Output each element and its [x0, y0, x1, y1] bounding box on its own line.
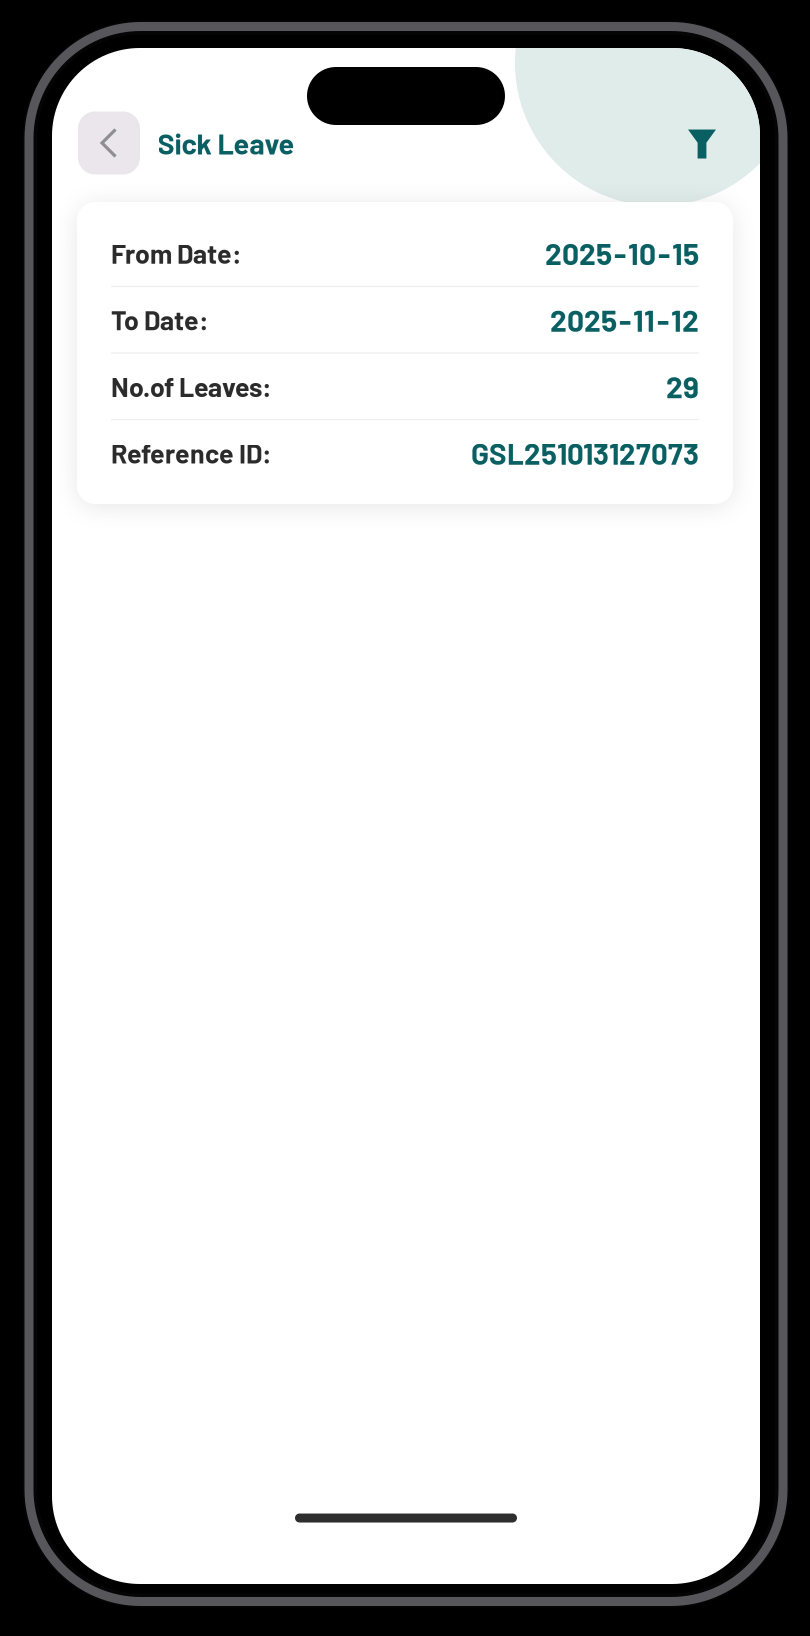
button[interactable]: Sick Leave — [155, 119, 297, 167]
staticText: To Date: — [111, 304, 209, 336]
staticText: From Date: — [111, 237, 242, 269]
staticText: GSL251013127073 — [471, 435, 699, 471]
staticText: 2025 - 10 - 15 — [545, 235, 699, 271]
staticText: Reference ID: — [111, 437, 272, 469]
staticText: 29 — [666, 368, 699, 404]
button[interactable]: Filter — [675, 117, 729, 171]
staticText: No.of Leaves: — [111, 370, 272, 402]
button[interactable]: Back — [78, 111, 140, 174]
staticText: Sick Leave — [157, 126, 294, 160]
staticText: 2025 - 11 - 12 — [550, 302, 699, 338]
